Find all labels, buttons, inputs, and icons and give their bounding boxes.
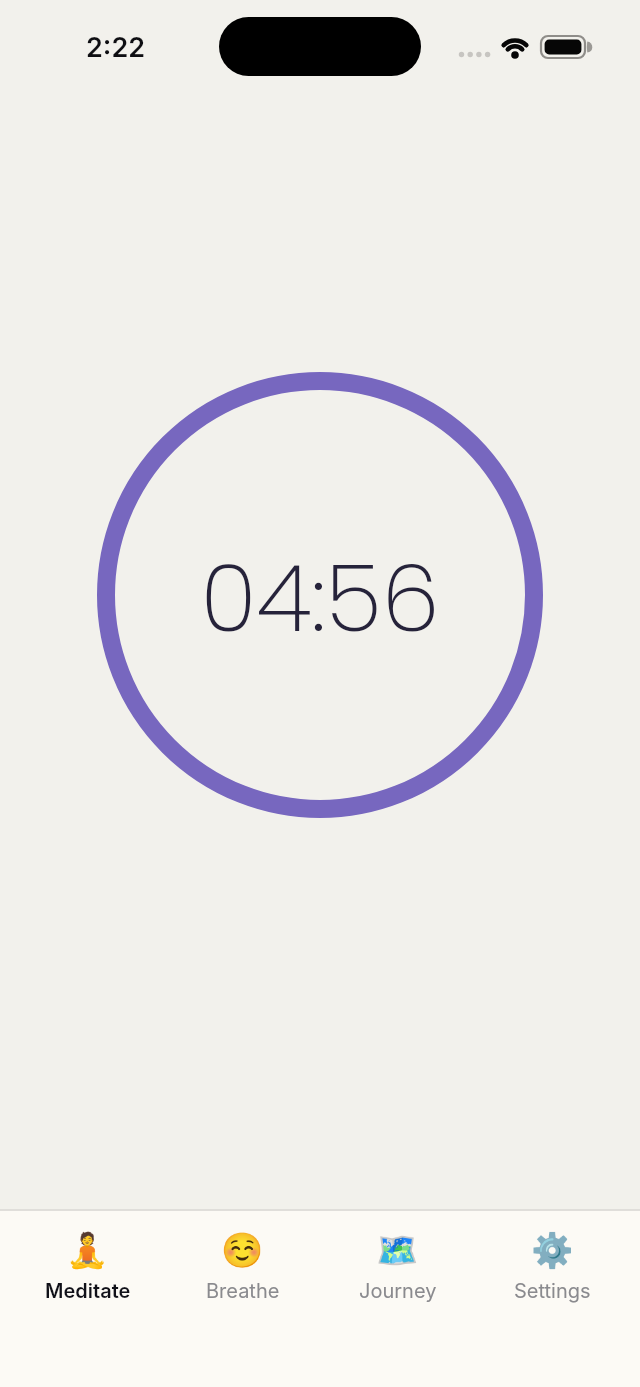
button[interactable]: ⚙️ <box>475 1230 630 1303</box>
staticText: Settings <box>514 1279 591 1303</box>
button[interactable]: 🧘 <box>10 1230 165 1303</box>
staticText: ⚙️ <box>531 1230 574 1270</box>
button[interactable]: 🗺️ <box>320 1230 475 1303</box>
staticText: 🧘 <box>66 1230 109 1270</box>
staticText: 04:56 <box>200 533 440 663</box>
staticText: Meditate <box>45 1279 131 1303</box>
staticText: ☺️ <box>221 1230 264 1270</box>
staticText: Journey <box>359 1279 437 1303</box>
staticText: Breathe <box>206 1279 280 1303</box>
button[interactable]: ☺️ <box>165 1230 320 1303</box>
staticText: 2:22 <box>86 31 146 64</box>
staticText: 🗺️ <box>376 1230 419 1270</box>
